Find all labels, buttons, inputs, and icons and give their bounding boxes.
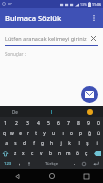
staticText: v (40, 150, 43, 157)
staticText: 4 (37, 120, 40, 127)
staticText: 6 (57, 120, 60, 127)
staticText: 3 (26, 120, 29, 127)
button[interactable]: Keyboard settings (87, 109, 93, 115)
button[interactable]: Home (35, 169, 69, 183)
staticText: Lütfen aranacak kelimeyi giriniz (5, 35, 89, 42)
button[interactable]: j (56, 138, 65, 148)
staticText: De (12, 109, 18, 115)
button[interactable]: Backspace (91, 148, 103, 158)
button[interactable]: ç (82, 148, 91, 158)
button[interactable]: i (92, 138, 101, 148)
button[interactable]: ü (94, 128, 103, 138)
button[interactable]: 9 (83, 118, 93, 128)
button[interactable]: 6 (53, 118, 63, 128)
staticText: n (58, 150, 61, 157)
button[interactable]: Türkçe (33, 158, 70, 169)
button[interactable]: k (65, 138, 74, 148)
button[interactable]: l (74, 138, 83, 148)
staticText: . (74, 160, 76, 167)
button[interactable]: e (16, 128, 24, 138)
button[interactable]: 4 (33, 118, 43, 128)
button[interactable]: ı (58, 128, 67, 138)
staticText: u (52, 130, 55, 137)
button[interactable]: 7 (63, 118, 73, 128)
button[interactable]: Send mail (81, 86, 98, 103)
staticText: h (50, 140, 53, 147)
button[interactable]: d (20, 138, 29, 148)
button[interactable]: t (32, 128, 40, 138)
button[interactable]: o (67, 128, 76, 138)
staticText: i (96, 140, 98, 147)
staticText: c (31, 150, 34, 157)
button[interactable]: ğ (85, 128, 94, 138)
staticText: a (5, 140, 8, 147)
staticText: l (78, 140, 80, 147)
staticText: w (10, 130, 14, 137)
staticText: ş (86, 140, 89, 147)
button[interactable]: 1 (0, 118, 11, 128)
button[interactable]: Enter (88, 158, 103, 169)
staticText: s (14, 140, 17, 147)
staticText: y (43, 130, 46, 137)
staticText: q (3, 130, 6, 137)
button[interactable]: Clear (89, 34, 98, 43)
button[interactable]: Voice input (24, 158, 33, 169)
button[interactable]: 8 (73, 118, 83, 128)
button[interactable]: s (11, 138, 20, 148)
button[interactable]: h (47, 138, 56, 148)
button[interactable]: n (55, 148, 64, 158)
staticText: 2 (15, 120, 18, 127)
button[interactable]: Shift (0, 148, 11, 158)
button[interactable]: Back (0, 169, 35, 183)
button[interactable]: f (29, 138, 38, 148)
button[interactable]: ö (73, 148, 82, 158)
button[interactable]: x (19, 148, 28, 158)
staticText: g (41, 140, 44, 147)
staticText: j (60, 140, 62, 147)
button[interactable]: , (15, 158, 24, 169)
button[interactable]: Recent apps (69, 169, 103, 183)
staticText: x (22, 150, 25, 157)
staticText: t (35, 130, 37, 137)
staticText: 0 (97, 120, 100, 127)
staticText: 7 (67, 120, 70, 127)
staticText: e (19, 130, 22, 137)
button[interactable]: 0 (93, 118, 103, 128)
staticText: 11:06 (92, 2, 101, 7)
staticText: 123 (4, 161, 12, 167)
button[interactable]: 3 (22, 118, 33, 128)
button[interactable]: . (70, 158, 79, 169)
staticText: d (23, 140, 26, 147)
staticText: f (33, 140, 35, 147)
button[interactable]: y (40, 128, 49, 138)
button[interactable]: m (64, 148, 73, 158)
button[interactable]: Lütfen aranacak kelimeyi giriniz (5, 34, 98, 43)
staticText: z (14, 150, 17, 157)
button[interactable]: p (76, 128, 85, 138)
staticText: ü (97, 130, 100, 137)
staticText: ç (85, 150, 88, 157)
button[interactable]: u (49, 128, 58, 138)
staticText: 1 (4, 120, 7, 127)
button[interactable]: 2 (11, 118, 22, 128)
button[interactable]: c (28, 148, 37, 158)
staticText: ö (76, 150, 79, 157)
button[interactable]: a (2, 138, 11, 148)
button[interactable]: q (0, 128, 8, 138)
button[interactable]: ş (83, 138, 92, 148)
button[interactable]: z (11, 148, 19, 158)
button[interactable]: v (37, 148, 46, 158)
button[interactable]: More options (85, 9, 103, 27)
staticText: 13% (80, 2, 87, 7)
staticText: 8 (77, 120, 80, 127)
button[interactable]: g (38, 138, 47, 148)
button[interactable]: Emoji (79, 158, 88, 169)
button[interactable]: 123 (0, 158, 15, 169)
button[interactable]: w (8, 128, 16, 138)
staticText: Bulmaca Sözlük (5, 13, 62, 23)
button[interactable]: r (24, 128, 32, 138)
staticText: r (27, 130, 29, 137)
button[interactable]: b (46, 148, 55, 158)
staticText: m (66, 150, 71, 157)
button[interactable]: 5 (43, 118, 53, 128)
